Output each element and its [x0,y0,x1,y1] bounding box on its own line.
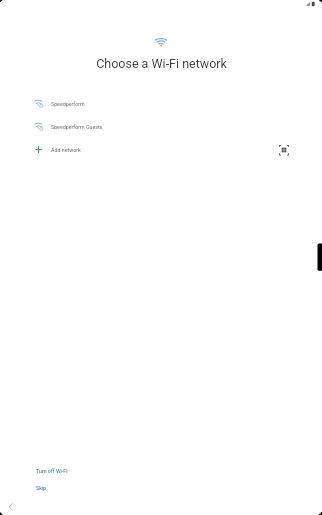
button[interactable]: Scan QR code [274,138,294,161]
button[interactable]: Speedperform [0,92,322,115]
staticText: Choose a Wi-Fi network [96,56,227,71]
staticText: Skip [36,485,47,491]
button[interactable]: Add network [0,138,273,161]
staticText: Speedperform Guests [51,124,103,130]
button[interactable]: Turn off Wi-Fi [32,465,72,477]
staticText: Speedperform [51,101,85,107]
staticText: Turn off Wi-Fi [36,468,68,474]
button[interactable]: Speedperform Guests [0,115,322,138]
button[interactable]: Skip [32,482,51,494]
button[interactable]: Back [4,498,20,514]
staticText: Add network [51,147,81,153]
